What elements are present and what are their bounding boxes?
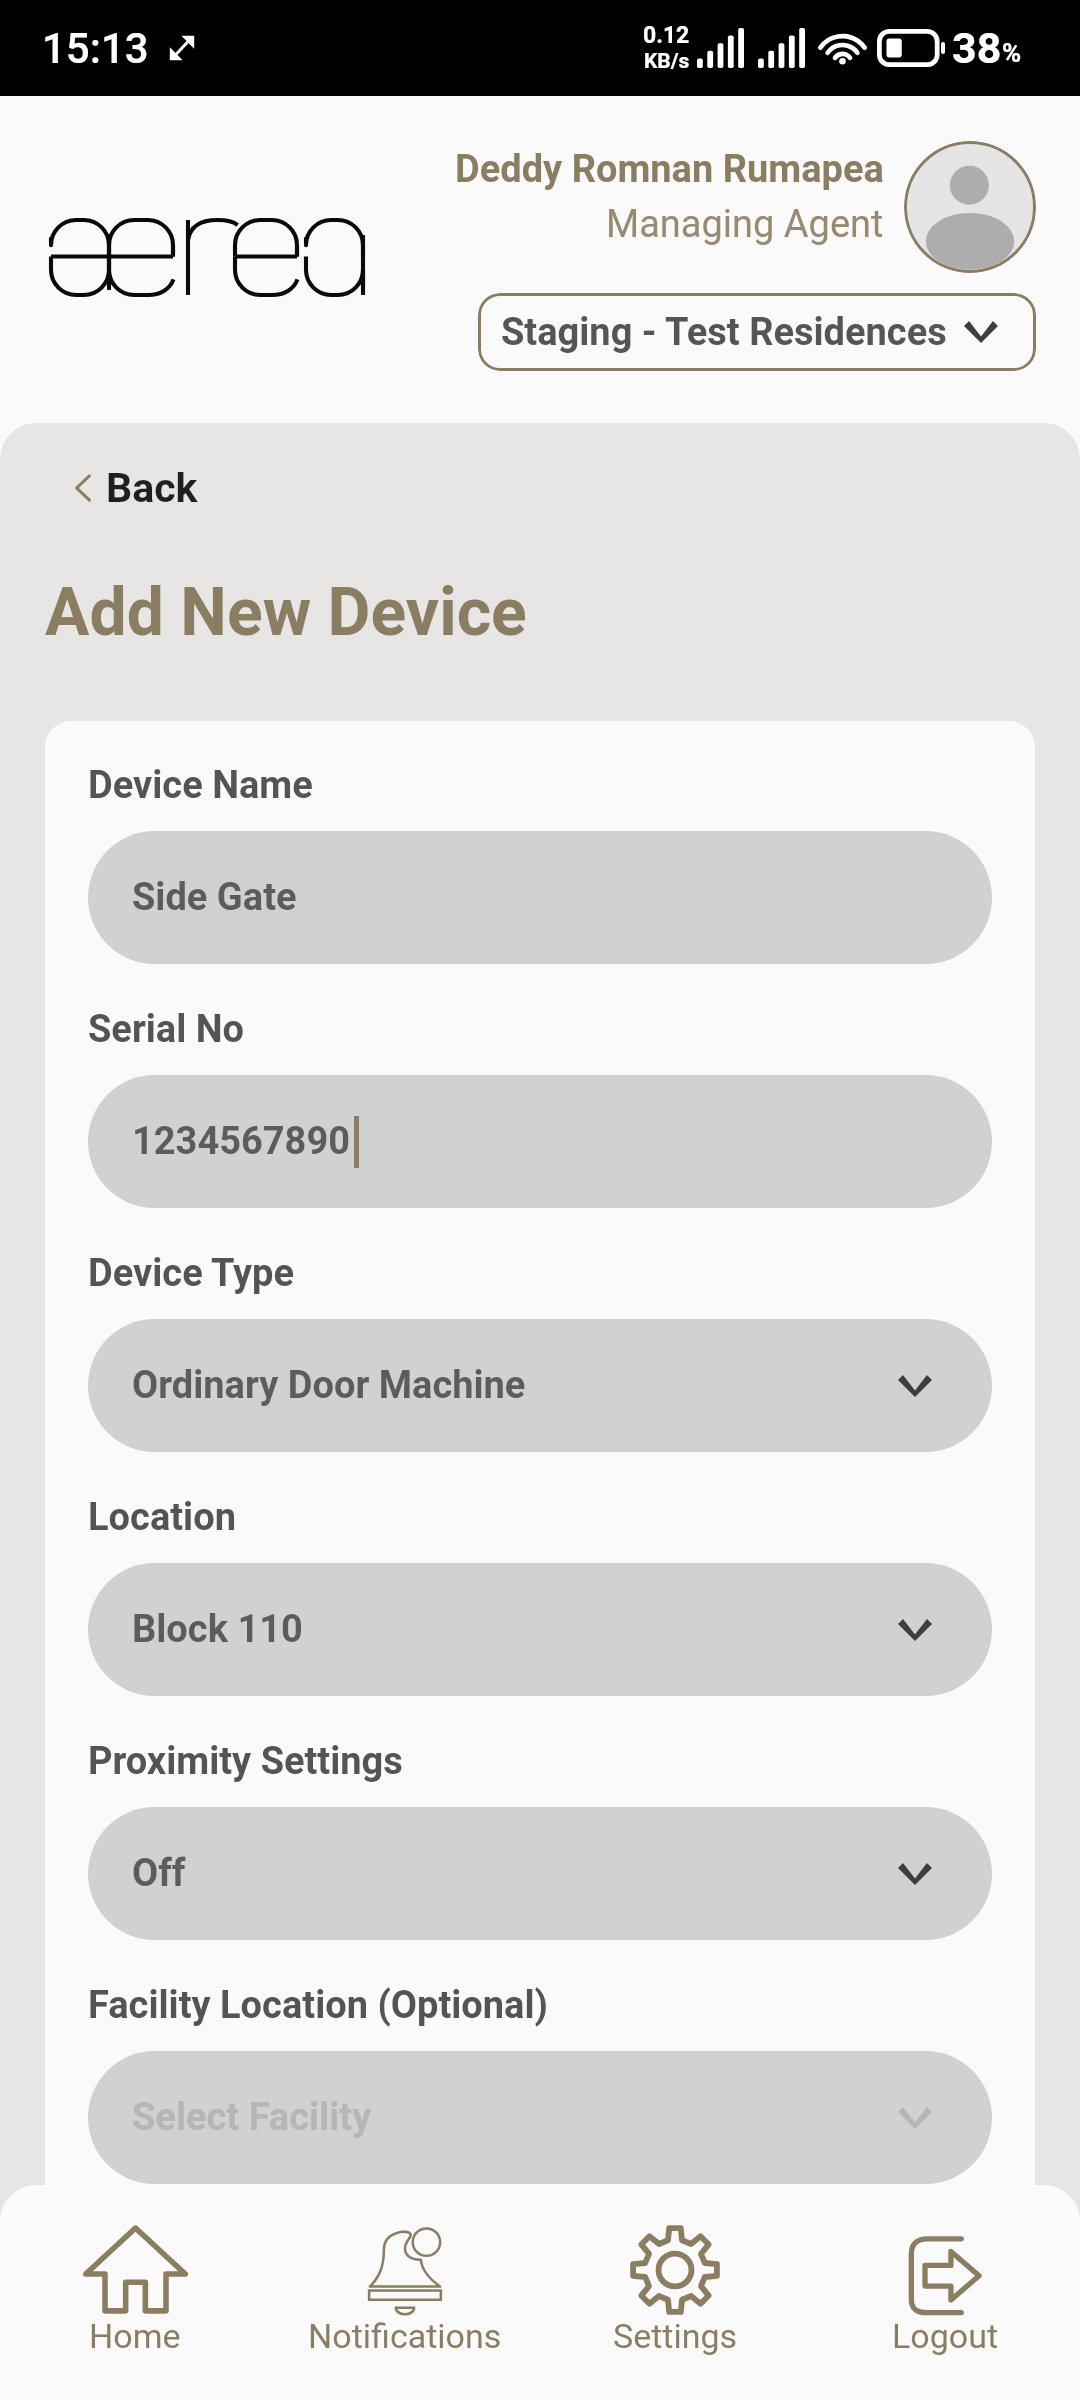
staticText: Staging - Test Residences: [501, 310, 947, 355]
staticText: Settings: [613, 2316, 738, 2356]
button[interactable]: aerea home: [50, 218, 364, 297]
staticText: Device Name: [88, 763, 313, 808]
staticText: Facility Location (Optional): [88, 1983, 548, 2028]
button[interactable]: Staging - Test Residences: [478, 293, 1036, 371]
staticText: 1234567890: [132, 1119, 351, 1164]
button[interactable]: Home: [0, 2223, 270, 2356]
staticText: 0.12: [643, 22, 690, 49]
staticText: Add New Device: [45, 574, 527, 651]
staticText: KB/s: [644, 49, 690, 74]
staticText: Select Facility: [132, 2095, 372, 2140]
staticText: Serial No: [88, 1007, 245, 1052]
staticText: Side Gate: [132, 875, 297, 920]
staticText: %: [1002, 38, 1022, 68]
button[interactable]: Settings: [540, 2223, 810, 2356]
staticText: Ordinary Door Machine: [132, 1363, 526, 1408]
staticText: Back: [106, 464, 198, 512]
button[interactable]: Back: [45, 456, 220, 520]
staticText: Block 110: [132, 1607, 303, 1652]
staticText: Managing Agent: [606, 202, 884, 247]
staticText: Proximity Settings: [88, 1739, 403, 1784]
button[interactable]: Block 110: [88, 1563, 992, 1696]
button[interactable]: 1234567890: [88, 1075, 992, 1208]
staticText: Off: [132, 1851, 186, 1896]
button[interactable]: Off: [88, 1807, 992, 1940]
staticText: Deddy Romnan Rumapea: [455, 147, 884, 192]
button[interactable]: Notifications: [270, 2223, 540, 2356]
staticText: Notifications: [308, 2316, 502, 2356]
button[interactable]: Side Gate: [88, 831, 992, 964]
button[interactable]: Select Facility: [88, 2051, 992, 2184]
staticText: Home: [89, 2316, 181, 2356]
button[interactable]: Ordinary Door Machine: [88, 1319, 992, 1452]
button[interactable]: Profile: [904, 141, 1036, 273]
staticText: 15:13: [42, 24, 149, 73]
staticText: Device Type: [88, 1251, 295, 1296]
staticText: Location: [88, 1495, 236, 1540]
staticText: Logout: [892, 2316, 999, 2356]
button[interactable]: Logout: [810, 2223, 1080, 2356]
staticText: 38: [952, 23, 1002, 73]
